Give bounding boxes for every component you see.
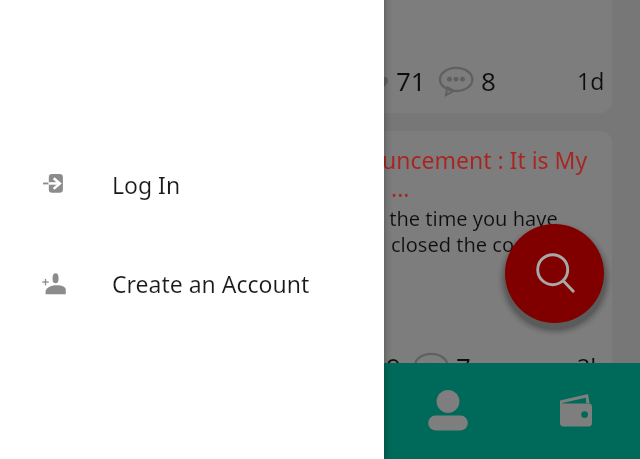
staticText: 71 [396, 63, 426, 98]
button[interactable]: 71 [28, 0, 612, 113]
staticText: 9 [386, 349, 401, 379]
staticText: Create an Account [112, 268, 310, 299]
staticText: Log In [112, 169, 181, 200]
staticText: 3h [577, 351, 605, 379]
staticText: At the time you have [364, 205, 558, 232]
button[interactable]: Profile [384, 363, 512, 459]
staticText: ... [391, 172, 410, 203]
button[interactable]: Search [505, 224, 604, 323]
staticText: 8 [481, 63, 496, 98]
button[interactable]: Wallet [512, 363, 640, 459]
staticText: Announcement : It is My [325, 144, 588, 175]
button[interactable]: Log In [0, 163, 384, 205]
staticText: closed the co [391, 231, 514, 258]
button[interactable]: Announcement : It is My [28, 131, 612, 379]
button[interactable]: Create an Account [0, 262, 384, 304]
staticText: 1d [577, 65, 605, 96]
staticText: 7 [456, 349, 471, 379]
